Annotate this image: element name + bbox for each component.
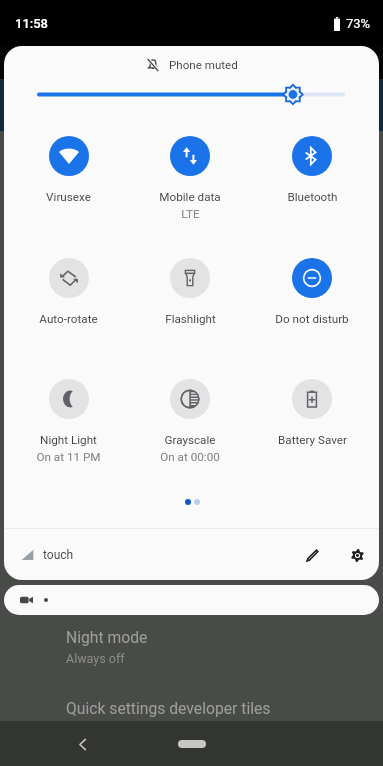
staticText: 73% [346,16,371,31]
staticText: Battery Saver [278,433,347,447]
staticText: Bluetooth [287,190,338,204]
button[interactable]: Virusexe [8,136,129,204]
staticText: Night mode [66,628,148,646]
button[interactable]: Night Light [8,379,129,464]
staticText: On at 00:00 [160,450,220,464]
staticText: On at 11 PM [36,450,101,464]
staticText: LTE [181,207,200,221]
staticText: Auto-rotate [39,312,98,326]
button[interactable]: Do not disturb [251,258,373,326]
staticText: Phone muted [169,58,238,72]
staticText: Flashlight [165,312,216,326]
button[interactable]: Auto-rotate [8,258,129,326]
button[interactable]: Bluetooth [251,136,373,204]
button[interactable]: Home [178,740,206,748]
staticText: Virusexe [46,190,91,204]
button[interactable]: Edit [290,533,334,577]
staticText: touch [43,548,74,562]
button[interactable]: Battery Saver [251,379,373,447]
staticText: Do not disturb [275,312,349,326]
staticText: Quick settings developer tiles [66,699,271,717]
button[interactable]: Grayscale [129,379,251,464]
button[interactable]: Settings [335,533,379,577]
button[interactable]: Back [66,728,98,760]
button[interactable]: Mobile data [129,136,251,221]
staticText: Mobile data [159,190,221,204]
button[interactable]: Phone muted [146,54,238,76]
staticText: Night Light [40,433,97,447]
staticText: Grayscale [164,433,216,447]
staticText: Always off [66,651,125,666]
button[interactable] [4,585,379,615]
staticText: 11:58 [15,16,49,31]
button[interactable]: Flashlight [129,258,251,326]
